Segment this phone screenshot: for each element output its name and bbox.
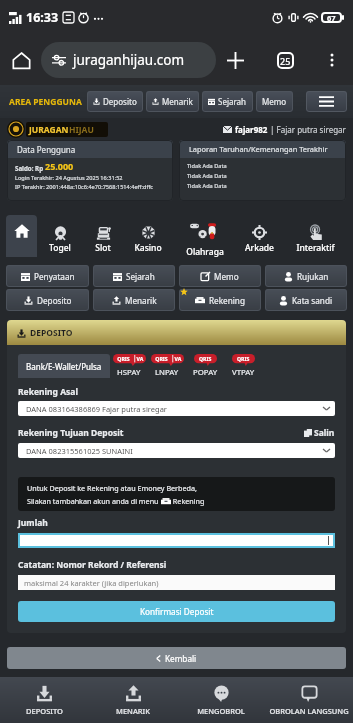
button[interactable]: Slot: [83, 215, 122, 257]
staticText: Rekening Tujuan Deposit: [18, 427, 124, 439]
button[interactable]: MENARIK: [89, 677, 177, 723]
button[interactable]: Sejarah: [93, 265, 175, 287]
staticText: Arkade: [245, 242, 274, 254]
button[interactable]: Arkade: [235, 215, 284, 257]
staticText: Untuk Deposit ke Rekening atau Emoney Be…: [27, 483, 197, 493]
staticText: Data Pengguna: [17, 144, 76, 155]
staticText: Login Terakhir: 24 Agustus 2025 16:31:52: [15, 174, 123, 182]
staticText: Sejarah: [218, 96, 247, 107]
button[interactable]: QRIS: [186, 354, 224, 378]
staticText: maksimal 24 karakter (jika diperlukan): [24, 578, 159, 588]
button[interactable]: Bank/E-Wallet/Pulsa: [18, 354, 110, 378]
staticText: MENGOBROL: [197, 706, 245, 716]
staticText: Penyataan: [34, 271, 75, 282]
staticText: QRIS: [113, 355, 134, 362]
staticText: 25: [280, 55, 291, 67]
staticText: QRIS: [199, 355, 212, 362]
button[interactable]: Menarik: [146, 91, 199, 112]
button[interactable]: Kasino: [122, 215, 174, 257]
staticText: Kata sandi: [292, 295, 333, 306]
button[interactable]: DANA 082315561025 SUNAINI: [18, 443, 335, 458]
staticText: Deposito: [37, 295, 72, 306]
staticText: VA: [134, 355, 146, 362]
button[interactable]: Open tabs: [270, 45, 300, 75]
button[interactable]: Salin: [304, 427, 335, 439]
staticText: Memo: [262, 96, 287, 107]
staticText: Silakan tambahkan akun anda di menu: [27, 496, 161, 506]
staticText: Rekening: [209, 295, 245, 306]
staticText: Rekening: [171, 496, 205, 506]
button[interactable]: Interaktif: [284, 215, 346, 257]
button[interactable]: New tab: [220, 45, 250, 75]
staticText: VTPAY: [232, 367, 255, 378]
staticText: Menarik: [125, 295, 157, 306]
button[interactable]: OBROLAN LANGSUNG: [265, 677, 353, 723]
staticText: POPAY: [193, 367, 218, 378]
button[interactable]: QRIS: [224, 354, 262, 378]
staticText: 16:33: [26, 9, 59, 26]
staticText: Bank/E-Wallet/Pulsa: [26, 361, 102, 372]
button[interactable]: Sejarah: [202, 91, 253, 112]
staticText: DEPOSITO: [30, 327, 73, 339]
staticText: 67: [327, 13, 336, 23]
staticText: DANA 083164386869 Fajar putra siregar: [26, 404, 167, 414]
staticText: VA: [172, 355, 184, 362]
staticText: QRIS: [237, 355, 250, 362]
button[interactable]: Deposito: [6, 289, 89, 311]
button[interactable]: Kata sandi: [265, 289, 347, 311]
staticText: Deposito: [103, 96, 137, 107]
staticText: Olahraga: [186, 246, 224, 257]
button[interactable]: Home: [6, 45, 36, 75]
staticText: Kasino: [134, 242, 162, 254]
staticText: IP Terakhir: 2001:448a:10c6:4e70:7568:15…: [15, 183, 153, 191]
button[interactable]: Penyataan: [6, 265, 89, 287]
button[interactable]: Memo: [179, 265, 261, 287]
staticText: MENARIK: [116, 706, 150, 716]
button[interactable]: QRIS: [110, 354, 148, 378]
staticText: OBROLAN LANGSUNG: [269, 706, 349, 716]
staticText: Jumlah: [18, 517, 48, 529]
staticText: DEPOSITO: [26, 706, 63, 716]
staticText: Laporan Taruhan/Kemenangan Terakhir: [189, 144, 328, 154]
staticText: Sejarah: [126, 271, 155, 282]
staticText: Tidak Ada Data: [187, 162, 227, 170]
staticText: Catatan: Nomor Rekord / Referensi: [18, 559, 167, 571]
button[interactable]: DANA 083164386869 Fajar putra siregar: [18, 401, 335, 416]
button[interactable]: Menu: [306, 91, 347, 112]
staticText: Saldo: Rp: [15, 164, 45, 172]
button[interactable]: Olahraga: [174, 215, 235, 257]
staticText: Interaktif: [296, 242, 335, 254]
button[interactable]: MENGOBROL: [177, 677, 265, 723]
button[interactable]: [18, 533, 335, 548]
staticText: Rujukan: [297, 271, 329, 282]
button[interactable]: QRIS: [148, 354, 186, 378]
staticText: juraganhijau.com: [73, 51, 185, 69]
staticText: Tidak Ada Data: [187, 172, 227, 180]
button[interactable]: Home: [6, 215, 37, 257]
button[interactable]: Rujukan: [265, 265, 347, 287]
staticText: QRIS: [151, 355, 172, 362]
staticText: 25.000: [45, 160, 74, 172]
staticText: AREA PENGGUNA: [9, 96, 82, 108]
button[interactable]: Rekening: [179, 289, 261, 311]
staticText: Menarik: [162, 96, 193, 107]
staticText: JURAGAN: [29, 124, 69, 136]
button[interactable]: juraganhijau.com: [41, 42, 216, 78]
staticText: Tidak Ada Data: [187, 182, 227, 190]
button[interactable]: DEPOSITO: [0, 677, 89, 723]
button[interactable]: Memo: [256, 91, 293, 112]
staticText: Salin: [314, 427, 335, 439]
button[interactable]: Kembali: [7, 647, 346, 669]
staticText: HSPAY: [117, 367, 141, 378]
staticText: Slot: [95, 242, 111, 254]
staticText: DANA 082315561025 SUNAINI: [26, 446, 133, 456]
button[interactable]: More options: [317, 45, 347, 75]
button[interactable]: Konfirmasi Deposit: [18, 601, 335, 622]
staticText: fajar982: [235, 124, 268, 135]
staticText: Memo: [214, 271, 239, 282]
button[interactable]: Deposito: [87, 91, 143, 112]
button[interactable]: Togel: [37, 215, 83, 257]
staticText: Kembali: [165, 653, 197, 664]
staticText: LNPAY: [155, 367, 179, 378]
button[interactable]: Menarik: [93, 289, 175, 311]
